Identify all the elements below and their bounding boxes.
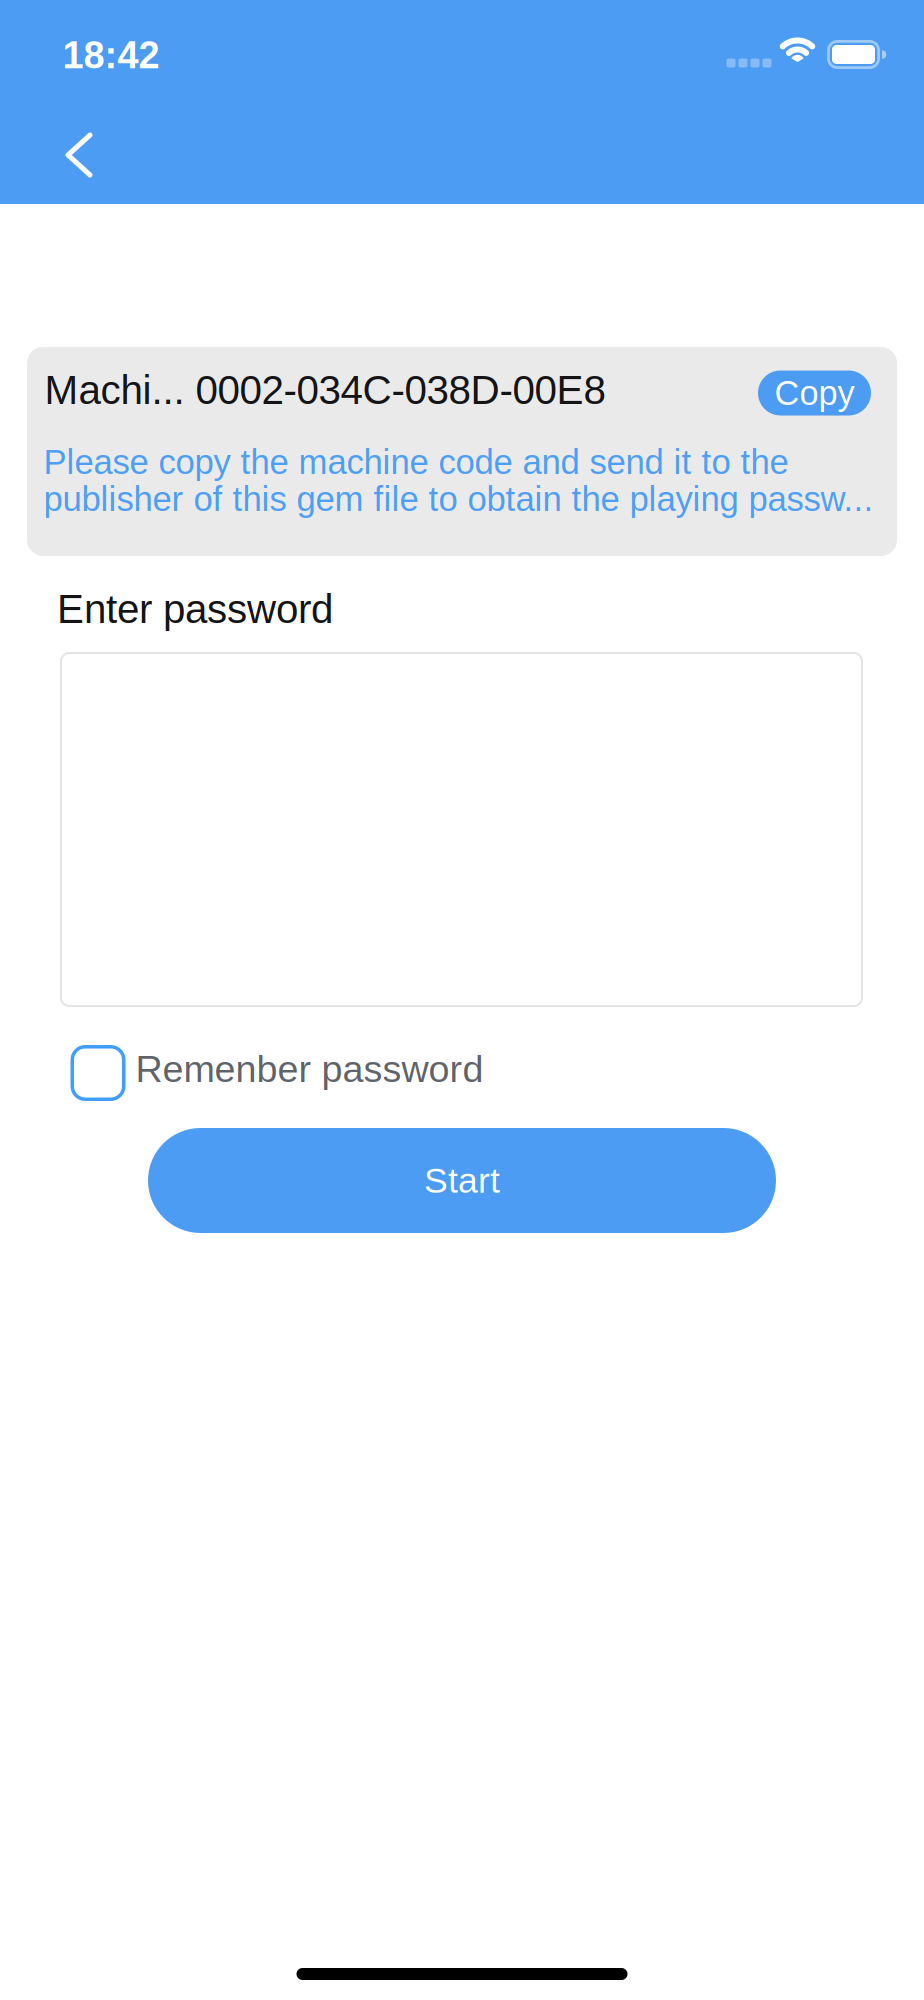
button[interactable]: Copy — [758, 370, 871, 415]
staticText: Start — [424, 1161, 500, 1200]
button[interactable]: Start — [148, 1128, 776, 1233]
staticText: Please copy the machine code and send it… — [43, 443, 788, 481]
button[interactable]: Remenber password — [70, 1045, 483, 1101]
staticText: 18:42 — [62, 34, 159, 76]
staticText: Copy — [774, 374, 854, 412]
button[interactable]: Back — [38, 115, 118, 195]
staticText: Machi... 0002-034C-038D-00E8 — [44, 367, 605, 412]
staticText: Enter password — [57, 586, 333, 631]
staticText: Remenber password — [135, 1048, 483, 1090]
staticText: publisher of this gem file to obtain the… — [43, 480, 873, 518]
